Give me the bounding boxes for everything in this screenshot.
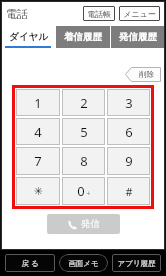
staticText: アプリ履歴 (117, 259, 156, 268)
staticText: 3 (125, 94, 133, 112)
button[interactable]: 2 (62, 89, 105, 116)
button[interactable]: 着信履歴 (55, 26, 110, 48)
staticText: 着信履歴 (64, 31, 102, 43)
button[interactable]: # (107, 177, 150, 205)
button[interactable]: 9 (107, 147, 150, 175)
staticText: 電話帳 (87, 9, 111, 19)
staticText: 9 (125, 152, 133, 170)
button[interactable]: 発信 (47, 214, 120, 234)
button[interactable]: 0 (62, 177, 105, 205)
button[interactable]: 電話帳 (83, 6, 115, 21)
staticText: 7 (34, 152, 42, 170)
staticText: 削除 (139, 70, 154, 79)
staticText: 0 (77, 182, 85, 200)
staticText: 8 (80, 152, 88, 170)
staticText: ダイヤル (9, 31, 48, 43)
button[interactable]: 7 (16, 147, 60, 175)
button[interactable]: 画面メモ (59, 254, 108, 272)
staticText: 発信履歴 (119, 31, 157, 43)
staticText: # (125, 184, 133, 199)
staticText: 発信 (81, 218, 100, 230)
staticText: 2 (80, 94, 88, 112)
button[interactable]: 戻 る (5, 254, 55, 272)
button[interactable]: アプリ履歴 (112, 254, 161, 272)
staticText: 6 (125, 123, 133, 141)
button[interactable]: 1 (16, 89, 60, 116)
staticText: 5 (80, 123, 88, 141)
staticText: 電話 (6, 7, 28, 21)
staticText: + (86, 189, 91, 199)
button[interactable]: 4 (16, 118, 60, 145)
button[interactable]: 削除 (125, 67, 161, 82)
button[interactable]: メニュー (119, 6, 160, 21)
staticText: ✳ (33, 185, 43, 198)
button[interactable]: ダイヤル (1, 26, 55, 48)
button[interactable]: 6 (107, 118, 150, 145)
staticText: 戻 る (21, 258, 39, 268)
staticText: 1 (34, 94, 42, 112)
staticText: 画面メモ (68, 259, 99, 268)
button[interactable]: ✳ (16, 177, 60, 205)
button[interactable]: 3 (107, 89, 150, 116)
button[interactable]: 5 (62, 118, 105, 145)
staticText: 4 (34, 123, 42, 141)
staticText: メニュー (123, 9, 156, 19)
button[interactable]: 8 (62, 147, 105, 175)
button[interactable]: 発信履歴 (110, 26, 165, 48)
